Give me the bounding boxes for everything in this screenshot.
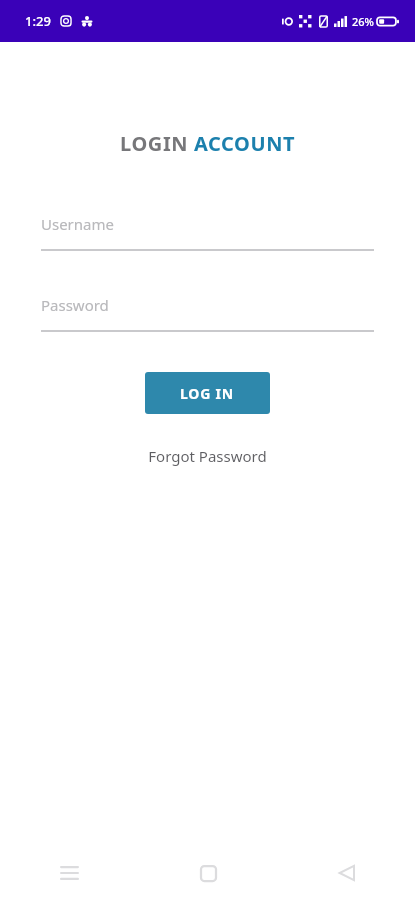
button[interactable]: Username <box>41 214 374 251</box>
button[interactable]: Back <box>277 846 415 900</box>
staticText: Username <box>41 214 114 234</box>
staticText: 1:29 <box>25 12 51 30</box>
staticText: LOGIN <box>120 130 194 157</box>
staticText: LOG IN <box>180 384 235 403</box>
button[interactable]: Recent apps <box>0 846 139 900</box>
button[interactable]: Forgot Password <box>142 444 273 468</box>
staticText: Forgot Password <box>148 446 267 466</box>
button[interactable]: Home <box>139 846 277 900</box>
staticText: Password <box>41 295 109 315</box>
button[interactable]: LOG IN <box>145 372 270 414</box>
staticText: 26% <box>352 14 374 29</box>
staticText: ACCOUNT <box>194 130 296 157</box>
button[interactable]: Password <box>41 295 374 332</box>
